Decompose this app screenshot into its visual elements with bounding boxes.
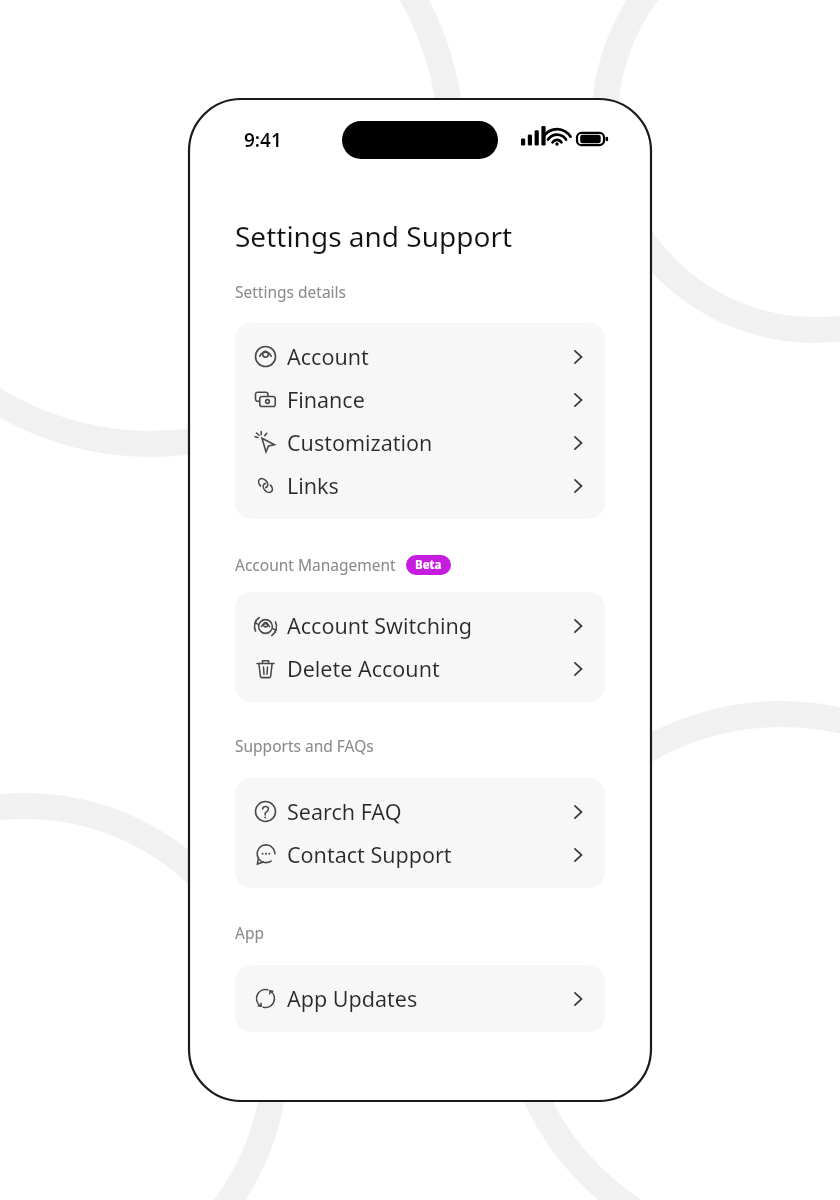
- staticText: App: [235, 922, 264, 943]
- button[interactable]: Contact Support: [235, 833, 605, 876]
- staticText: Links: [287, 471, 339, 500]
- staticText: Account Switching: [287, 611, 472, 640]
- staticText: Search FAQ: [287, 797, 402, 826]
- button[interactable]: Finance: [235, 378, 605, 421]
- button[interactable]: Search FAQ: [235, 790, 605, 833]
- button[interactable]: Delete Account: [235, 647, 605, 690]
- button[interactable]: Links: [235, 464, 605, 507]
- staticText: Delete Account: [287, 654, 440, 683]
- staticText: Beta: [415, 557, 442, 573]
- staticText: Finance: [287, 385, 365, 414]
- staticText: Account Management: [235, 554, 396, 575]
- staticText: Account: [287, 342, 369, 371]
- button[interactable]: Beta: [406, 555, 451, 575]
- button[interactable]: Account: [235, 335, 605, 378]
- staticText: Customization: [287, 428, 433, 457]
- staticText: Settings and Support: [235, 217, 513, 255]
- button[interactable]: Customization: [235, 421, 605, 464]
- staticText: Settings details: [235, 281, 346, 302]
- staticText: Contact Support: [287, 840, 452, 869]
- other: Status icons: [521, 128, 611, 150]
- button[interactable]: App Updates: [235, 977, 605, 1020]
- staticText: Supports and FAQs: [235, 735, 374, 756]
- button[interactable]: Account Switching: [235, 604, 605, 647]
- staticText: 9:41: [244, 127, 282, 153]
- staticText: App Updates: [287, 984, 418, 1013]
